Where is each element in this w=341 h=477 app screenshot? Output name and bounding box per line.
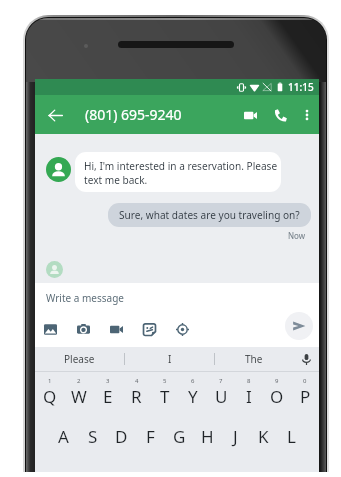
button[interactable]: 9 [263, 372, 291, 415]
button[interactable]: Hi, I'm interested in a reservation. Ple… [75, 152, 281, 192]
staticText: Now [288, 230, 306, 241]
staticText: O [270, 385, 284, 408]
button[interactable]: Back [37, 97, 73, 133]
staticText: 1 [48, 377, 52, 385]
button[interactable]: 3 [93, 372, 122, 415]
staticText: R [131, 385, 142, 408]
staticText: E [103, 385, 113, 408]
button[interactable]: Voice input [293, 347, 319, 371]
button[interactable]: 2 [64, 372, 93, 415]
staticText: 4 [135, 377, 139, 385]
staticText: 7 [219, 377, 223, 385]
button[interactable]: Insert image [34, 313, 67, 346]
staticText: 9 [275, 377, 279, 385]
staticText: T [160, 385, 170, 408]
button[interactable]: 5 [151, 372, 179, 415]
staticText: I [168, 352, 172, 366]
button[interactable]: Sticker [133, 313, 166, 346]
staticText: Please [64, 352, 95, 366]
button[interactable]: More options [295, 103, 319, 127]
button[interactable]: Send [285, 312, 313, 340]
button[interactable]: Call [265, 100, 295, 130]
staticText: J [233, 425, 238, 448]
staticText: L [287, 425, 296, 448]
button[interactable]: I [125, 347, 214, 371]
staticText: Sure, what dates are you traveling on? [119, 208, 300, 222]
staticText: G [173, 425, 186, 448]
staticText: 6 [191, 377, 195, 385]
button[interactable]: 4 [122, 372, 151, 415]
staticText: W [71, 385, 87, 408]
staticText: 5 [163, 377, 167, 385]
button[interactable]: 6 [179, 372, 207, 415]
staticText: S [88, 425, 98, 448]
button[interactable]: Please [35, 347, 124, 371]
staticText: P [300, 385, 311, 408]
button[interactable]: H [193, 415, 221, 458]
button[interactable]: G [165, 415, 193, 458]
staticText: A [58, 425, 69, 448]
staticText: (801) 695-9240 [85, 105, 182, 124]
staticText: 0 [303, 377, 307, 385]
button[interactable]: L [277, 415, 305, 458]
staticText: K [258, 425, 269, 448]
button[interactable]: The [215, 347, 293, 371]
staticText: The [245, 352, 263, 366]
staticText: Write a message [46, 291, 124, 305]
button[interactable]: F [136, 415, 165, 458]
button[interactable]: Record video [100, 313, 133, 346]
staticText: F [146, 425, 155, 448]
button[interactable]: 8 [235, 372, 263, 415]
staticText: 2 [77, 377, 81, 385]
button[interactable]: D [107, 415, 136, 458]
button[interactable]: 1 [35, 372, 64, 415]
staticText: Y [188, 385, 198, 408]
staticText: 3 [106, 377, 110, 385]
button[interactable]: 7 [207, 372, 235, 415]
staticText: H [201, 425, 214, 448]
staticText: Q [43, 385, 57, 408]
staticText: Hi, I'm interested in a reservation. Ple… [84, 159, 278, 187]
staticText: I [246, 385, 252, 408]
button[interactable]: Video call [235, 100, 265, 130]
button[interactable]: 0 [291, 372, 319, 415]
staticText: 11:15 [288, 80, 314, 94]
staticText: U [215, 385, 228, 408]
staticText: D [115, 425, 128, 448]
button[interactable]: J [221, 415, 249, 458]
button[interactable]: K [249, 415, 277, 458]
button[interactable]: Sure, what dates are you traveling on? [108, 203, 311, 227]
button[interactable]: Take photo [67, 313, 100, 346]
button[interactable]: S [78, 415, 107, 458]
button[interactable]: A [49, 415, 78, 458]
staticText: 8 [247, 377, 251, 385]
button[interactable]: Share location [166, 313, 199, 346]
